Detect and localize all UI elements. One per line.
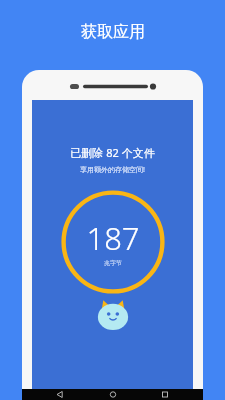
staticText: 获取应用 [81,22,145,42]
staticText: 187 [86,217,140,259]
staticText: 兆字节 [104,259,122,267]
staticText: 已删除 82 个文件 [70,145,155,160]
button[interactable]: Back [46,389,74,400]
staticText: 享用额外的存储空间! [80,165,145,175]
button[interactable]: 187 [61,190,165,294]
button[interactable]: Home [99,389,127,400]
button[interactable]: Recents [151,389,179,400]
